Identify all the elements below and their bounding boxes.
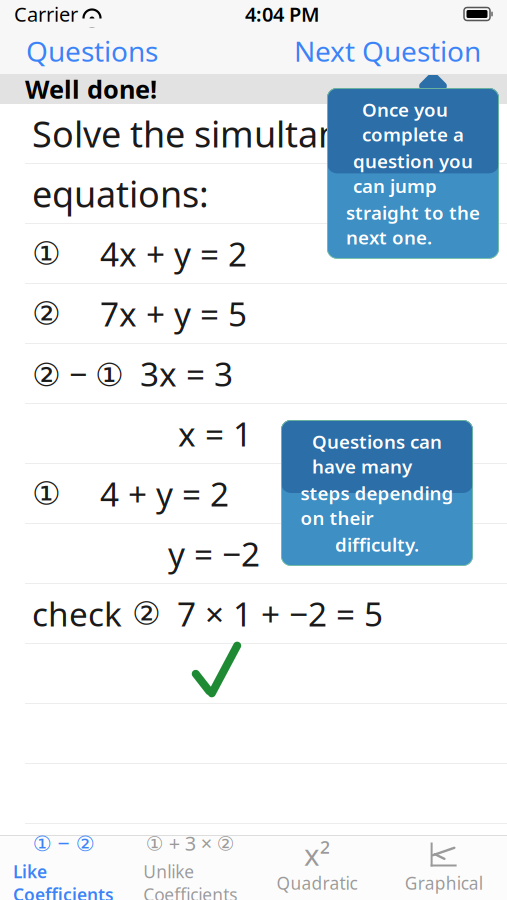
button[interactable]: ① + 3 × ② [127,824,254,900]
staticText: ① + 3 × ② [146,830,235,856]
staticText: steps depending on their [300,481,453,530]
staticText: ② [32,295,61,332]
staticText: ② [132,595,161,632]
staticText: 4x + y = 2 [100,231,247,276]
staticText: equations: [32,170,209,217]
staticText: Next Question [294,32,481,70]
staticText: Well done! [25,72,157,106]
staticText: 7x + y = 5 [100,291,247,336]
staticText: question you can jump [353,149,473,198]
staticText: 4:04 PM [245,1,320,27]
staticText: Once you complete a [362,97,464,147]
button[interactable]: Next Question [290,26,485,76]
staticText: ① − ② [32,829,94,857]
staticText: 4 + y = 2 [100,471,229,516]
staticText: check [32,591,122,636]
staticText: Unlike Coefficients [143,860,237,900]
staticText: ① [32,475,61,512]
button[interactable]: Graphical [380,835,507,900]
staticText: x = 1 [178,411,252,456]
staticText: difficulty. [335,532,419,557]
staticText: straight to the next one. [346,200,480,250]
button[interactable]: Questions [22,26,162,76]
staticText: 7 × 1 + −2 = 5 [177,591,383,636]
button[interactable]: x² [253,835,380,900]
staticText: 3x = 3 [140,351,233,396]
staticText: x² [304,835,330,874]
staticText: Questions [26,32,158,70]
staticText: Questions can have many [312,429,442,479]
staticText: Solve the simultaneous [32,110,421,157]
staticText: y = −2 [168,531,260,576]
staticText: Quadratic [276,871,357,894]
staticText: ② − ① [32,352,124,395]
staticText: Like Coefficients [13,860,114,900]
staticText: Graphical [405,871,483,894]
staticText: Carrier [14,1,78,27]
staticText: ① [32,235,61,272]
button[interactable]: ① − ② [0,824,127,900]
